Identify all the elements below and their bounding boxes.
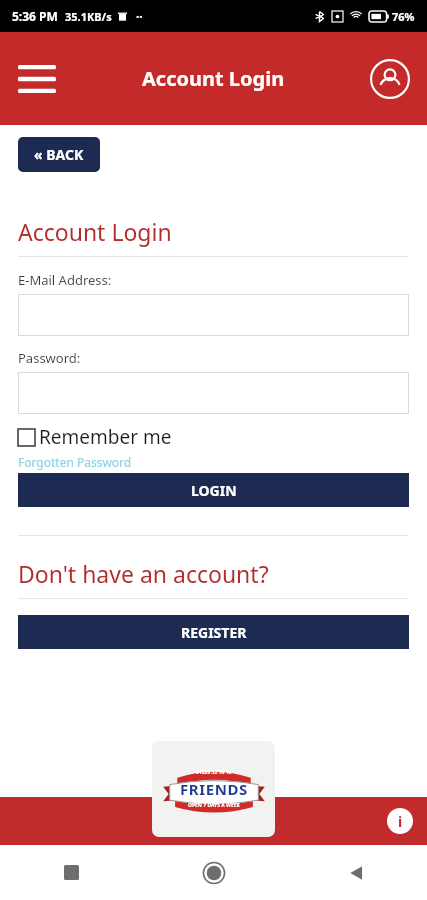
- button[interactable]: « BACK: [18, 137, 100, 172]
- staticText: 01229 52 16 16: [196, 769, 232, 776]
- staticText: FRIENDS: [180, 779, 248, 799]
- staticText: Account Login: [18, 216, 172, 247]
- staticText: 5:36 PM: [12, 8, 58, 24]
- staticText: OPEN 7 DAYS A WEEK: [188, 802, 240, 809]
- staticText: LOGIN: [191, 481, 237, 500]
- staticText: E-Mail Address:: [18, 271, 112, 289]
- staticText: 76%: [392, 9, 415, 24]
- staticText: ··: [136, 8, 143, 24]
- staticText: « BACK: [34, 145, 84, 164]
- staticText: Forgotten Password: [18, 454, 132, 470]
- button[interactable]: Forgotten Password: [18, 454, 132, 470]
- button[interactable]: Back: [285, 845, 427, 900]
- button[interactable]: Account: [367, 56, 413, 102]
- button[interactable]: 01229 52 16 16: [152, 741, 275, 837]
- button[interactable]: Recent apps: [0, 845, 143, 900]
- button[interactable]: REGISTER: [18, 615, 409, 649]
- staticText: Account Login: [142, 65, 285, 92]
- staticText: REGISTER: [181, 623, 247, 642]
- staticText: Password:: [18, 349, 81, 367]
- button[interactable]: Open navigation menu: [14, 56, 60, 102]
- staticText: i: [398, 812, 403, 831]
- button[interactable]: [18, 372, 409, 414]
- staticText: 35.1KB/s: [65, 9, 112, 24]
- button[interactable]: [18, 294, 409, 336]
- staticText: Remember me: [39, 424, 172, 450]
- button[interactable]: Home: [143, 845, 285, 900]
- staticText: Don't have an account?: [18, 558, 269, 589]
- button[interactable]: Information: [387, 808, 413, 834]
- button[interactable]: Remember me: [18, 424, 409, 450]
- button[interactable]: LOGIN: [18, 473, 409, 507]
